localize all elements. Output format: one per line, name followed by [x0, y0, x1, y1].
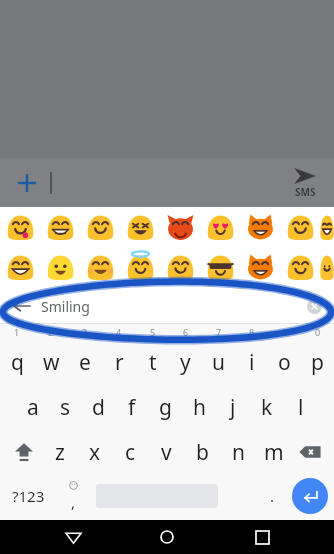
button[interactable]: b — [184, 430, 220, 474]
button[interactable]: m — [256, 430, 292, 474]
staticText: o — [278, 348, 291, 377]
staticText: r — [115, 348, 124, 377]
button[interactable]: ?123 — [4, 474, 52, 518]
button[interactable] — [320, 207, 334, 247]
staticText: 5 — [150, 326, 156, 338]
staticText: b — [196, 438, 209, 467]
button[interactable]: u — [202, 340, 235, 384]
button[interactable]: Add attachment — [8, 164, 46, 202]
staticText: q — [11, 348, 24, 377]
staticText: i — [249, 348, 255, 377]
staticText: u — [212, 348, 225, 377]
button[interactable]: z — [42, 430, 77, 474]
button[interactable]: Emoji — [200, 207, 240, 247]
button[interactable]: Clear search — [300, 292, 328, 320]
button[interactable]: Change language — [90, 480, 122, 512]
button[interactable]: Emoji — [40, 207, 80, 247]
button[interactable]: Emoji — [120, 207, 160, 247]
button[interactable]: g — [148, 385, 182, 429]
staticText: x — [89, 438, 101, 467]
button[interactable]: o — [268, 340, 301, 384]
button[interactable]: n — [220, 430, 256, 474]
button[interactable]: l — [284, 385, 318, 429]
staticText: 0 — [315, 326, 321, 338]
staticText: 8 — [249, 326, 255, 338]
button[interactable]: p — [301, 340, 334, 384]
staticText: 4 — [116, 326, 122, 338]
button[interactable]: c — [112, 430, 148, 474]
button[interactable]: . — [258, 482, 286, 510]
button[interactable]: Emoji — [0, 247, 40, 287]
button[interactable]: Emoji — [80, 207, 120, 247]
button[interactable]: w — [34, 340, 68, 384]
button[interactable]: j — [216, 385, 250, 429]
staticText: . — [270, 486, 275, 506]
button[interactable]: Emoji — [280, 207, 320, 247]
staticText: g — [159, 393, 172, 422]
staticText: 3 — [82, 326, 88, 338]
button[interactable]: Emoji — [240, 247, 280, 287]
button[interactable]: Enter — [292, 478, 328, 514]
button[interactable]: t — [136, 340, 169, 384]
staticText: z — [55, 438, 65, 467]
button[interactable]: Emoji comma — [58, 481, 88, 511]
staticText: s — [60, 393, 71, 422]
button[interactable]: Emoji — [120, 247, 160, 287]
button[interactable]: Home — [145, 520, 189, 554]
button[interactable]: Emoji — [80, 247, 120, 287]
staticText: , — [71, 492, 76, 511]
button[interactable]: i — [235, 340, 268, 384]
button[interactable]: Back — [51, 520, 95, 554]
button[interactable]: d — [82, 385, 115, 429]
staticText: 7 — [216, 326, 222, 338]
staticText: a — [27, 393, 39, 422]
staticText: y — [180, 348, 191, 377]
button[interactable]: k — [250, 385, 284, 429]
staticText: c — [125, 438, 136, 467]
button[interactable]: q — [0, 340, 34, 384]
button[interactable]: v — [148, 430, 184, 474]
button[interactable]: a — [16, 385, 49, 429]
button[interactable]: Emoji — [0, 207, 40, 247]
button[interactable]: f — [115, 385, 148, 429]
staticText: t — [149, 348, 157, 377]
staticText: e — [79, 348, 91, 377]
button[interactable]: Emoji — [280, 247, 320, 287]
staticText: SMS — [295, 185, 316, 199]
button[interactable]: Emoji — [160, 247, 200, 287]
staticText: n — [232, 438, 245, 467]
button[interactable]: r — [102, 340, 136, 384]
staticText: f — [128, 393, 136, 422]
staticText: h — [193, 393, 206, 422]
button[interactable]: Recent apps — [240, 520, 284, 554]
button[interactable]: Backspace — [292, 434, 328, 470]
staticText: k — [261, 393, 273, 422]
staticText: ?123 — [12, 486, 45, 506]
staticText: d — [92, 393, 105, 422]
button[interactable]: e — [68, 340, 102, 384]
button[interactable]: Emoji — [240, 207, 280, 247]
staticText: j — [230, 393, 236, 422]
button[interactable]: Emoji — [200, 247, 240, 287]
staticText: Smiling — [41, 297, 90, 316]
staticText: p — [311, 348, 324, 377]
staticText: 1 — [14, 326, 20, 338]
button[interactable]: Shift — [6, 434, 42, 470]
staticText: l — [298, 393, 304, 422]
staticText: 6 — [183, 326, 189, 338]
button[interactable]: Send SMS — [282, 160, 328, 206]
button[interactable]: s — [49, 385, 82, 429]
staticText: 9 — [282, 326, 288, 338]
staticText: m — [264, 438, 284, 467]
staticText: 2 — [48, 326, 54, 338]
staticText: w — [43, 348, 60, 377]
button[interactable]: y — [169, 340, 202, 384]
button[interactable] — [320, 247, 334, 287]
button[interactable]: x — [77, 430, 112, 474]
button[interactable]: h — [182, 385, 216, 429]
button[interactable]: Emoji — [40, 247, 80, 287]
button[interactable]: Back — [6, 290, 38, 322]
button[interactable]: Emoji — [160, 207, 200, 247]
staticText: v — [161, 438, 172, 467]
